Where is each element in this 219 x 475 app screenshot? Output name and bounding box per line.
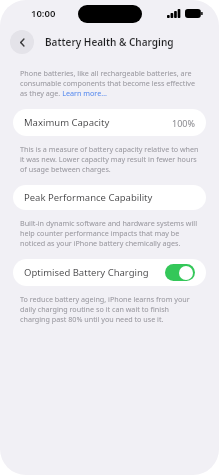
button[interactable]: Peak Performance Capability [13,185,206,210]
staticText: Maximum Capacity [24,116,110,129]
staticText: Peak Performance Capability [24,191,153,204]
staticText: To reduce battery ageing, iPhone learns … [20,294,199,324]
staticText: Phone batteries, like all rechargeable b… [20,68,199,98]
staticText: Built-in dynamic software and hardware s… [20,218,199,248]
button[interactable]: Optimised Battery Charging [13,259,206,286]
staticText: Optimised Battery Charging [24,266,149,279]
staticText: Battery Health & Charging [45,35,174,49]
button[interactable]: Back [10,30,34,54]
staticText: This is a measure of battery capacity re… [20,144,199,174]
button[interactable]: Optimised Battery Charging toggle [165,264,195,281]
staticText: 10:00 [31,7,56,20]
staticText: 100% [172,117,195,129]
button[interactable]: Maximum Capacity [13,109,206,136]
